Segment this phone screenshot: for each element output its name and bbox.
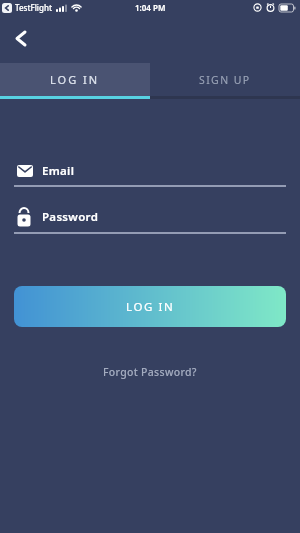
button[interactable] — [15, 30, 27, 47]
staticText: LOG IN — [50, 72, 100, 87]
button[interactable]: SIGN UP — [150, 63, 300, 96]
staticText: Forgot Password? — [103, 365, 197, 379]
staticText: TestFlight — [15, 2, 53, 13]
button[interactable]: Forgot Password? — [0, 362, 300, 382]
staticText: Email — [42, 163, 75, 179]
staticText: 1:04 PM — [135, 2, 166, 13]
staticText: SIGN UP — [199, 73, 251, 87]
staticText: Password — [42, 209, 99, 225]
button[interactable]: Password — [17, 206, 286, 228]
button[interactable]: LOG IN — [0, 63, 150, 96]
staticText: LOG IN — [126, 299, 175, 315]
button[interactable]: LOG IN — [14, 286, 286, 327]
button[interactable]: Email — [17, 162, 286, 180]
